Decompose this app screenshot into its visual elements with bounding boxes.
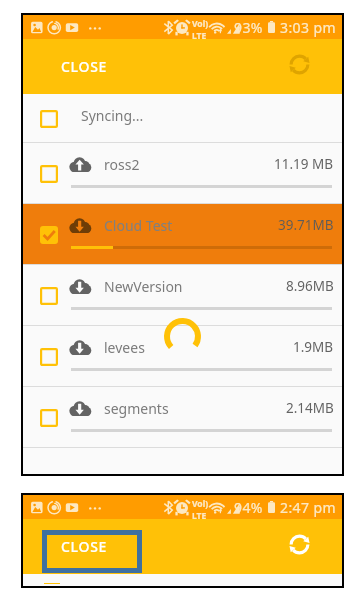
button[interactable]: CLOSE xyxy=(42,530,142,573)
staticText: 94% xyxy=(234,498,263,517)
staticText: 1.9MB xyxy=(293,338,334,356)
staticText: Syncing... xyxy=(81,106,144,125)
staticText: 3:03 pm xyxy=(280,18,336,37)
staticText: LTE xyxy=(192,30,207,42)
staticText: LTE xyxy=(192,510,207,522)
staticText: 11.19 MB xyxy=(274,155,334,173)
staticText: levees xyxy=(104,338,145,357)
button[interactable]: ross2 xyxy=(23,143,342,203)
button[interactable]: Refresh xyxy=(283,528,315,560)
button[interactable]: NewVersion xyxy=(23,265,342,325)
staticText: 2:47 pm xyxy=(280,498,336,517)
staticText: NewVersion xyxy=(104,277,183,296)
staticText: 39.71MB xyxy=(278,216,334,234)
button[interactable]: Syncing... xyxy=(23,94,342,142)
button[interactable]: Cloud Test xyxy=(23,204,342,264)
staticText: CLOSE xyxy=(61,57,108,76)
staticText: Vol) xyxy=(192,18,209,30)
staticText: 2.14MB xyxy=(286,399,334,417)
staticText: Cloud Test xyxy=(104,216,173,235)
staticText: Vol) xyxy=(192,498,209,510)
staticText: CLOSE xyxy=(61,537,108,556)
button[interactable]: segments xyxy=(23,387,342,447)
button[interactable]: Refresh xyxy=(283,48,315,80)
staticText: segments xyxy=(104,399,169,418)
staticText: 8.96MB xyxy=(286,277,334,295)
staticText: ross2 xyxy=(104,155,140,174)
button[interactable]: levees xyxy=(23,326,342,386)
staticText: 93% xyxy=(234,18,263,37)
button[interactable]: CLOSE xyxy=(42,50,142,93)
